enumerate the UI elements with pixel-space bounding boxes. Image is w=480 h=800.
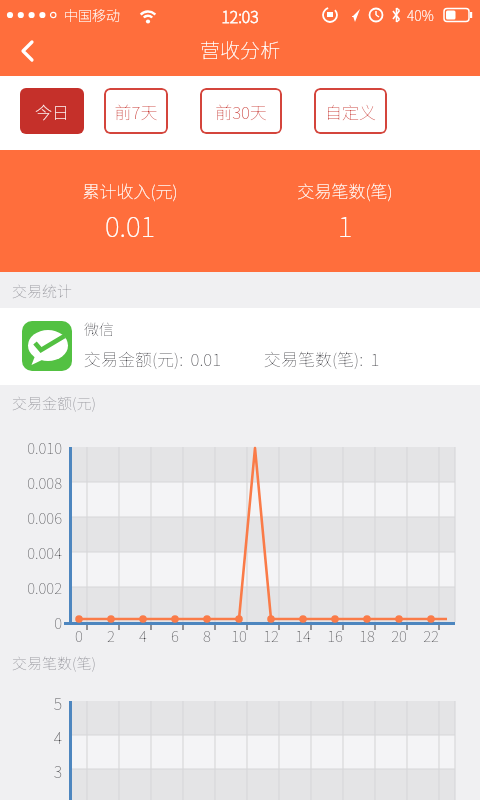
- staticText: 10: [225, 625, 253, 647]
- button[interactable]: 前7天: [104, 88, 168, 134]
- staticText: 4: [6, 725, 62, 748]
- staticText: 前7天: [104, 99, 168, 124]
- staticText: 交易金额(元): [12, 392, 96, 414]
- staticText: 交易笔数(笔): [12, 652, 96, 674]
- staticText: 0.002: [6, 577, 62, 599]
- staticText: 12: [257, 625, 285, 647]
- staticText: 自定义: [314, 99, 387, 124]
- staticText: 交易统计: [12, 280, 73, 302]
- staticText: 5: [6, 691, 62, 714]
- staticText: 16: [321, 625, 349, 647]
- button[interactable]: 今日: [20, 88, 84, 134]
- staticText: 14: [289, 625, 317, 647]
- staticText: 3: [6, 759, 62, 782]
- staticText: 中国移动: [64, 5, 120, 25]
- staticText: 0.008: [6, 472, 62, 494]
- staticText: 0.01: [0, 205, 260, 246]
- staticText: 前30天: [200, 99, 282, 124]
- staticText: 2: [97, 625, 125, 647]
- staticText: 20: [385, 625, 413, 647]
- staticText: 今日: [20, 99, 84, 124]
- staticText: 营收分析: [0, 35, 480, 64]
- staticText: 22: [417, 625, 445, 647]
- button[interactable]: 微信: [0, 308, 480, 385]
- staticText: 累计收入(元): [0, 178, 260, 203]
- button[interactable]: 自定义: [314, 88, 387, 134]
- staticText: 6: [161, 625, 189, 647]
- staticText: 8: [193, 625, 221, 647]
- staticText: 4: [129, 625, 157, 647]
- staticText: 微信: [84, 318, 115, 340]
- button[interactable]: [8, 31, 48, 71]
- staticText: 交易笔数(笔): 1: [264, 346, 380, 371]
- staticText: 12:03: [0, 4, 480, 27]
- staticText: 1: [215, 205, 475, 246]
- staticText: 0.004: [6, 542, 62, 564]
- staticText: 交易笔数(笔): [215, 178, 475, 203]
- staticText: 0: [6, 612, 62, 634]
- staticText: 0.006: [6, 507, 62, 529]
- button[interactable]: 前30天: [200, 88, 282, 134]
- staticText: 0.010: [6, 437, 62, 459]
- staticText: 40%: [407, 5, 434, 25]
- button[interactable]: 累计收入(元): [0, 150, 480, 272]
- staticText: 交易金额(元): 0.01: [84, 346, 222, 371]
- staticText: 0: [65, 625, 93, 647]
- staticText: 18: [353, 625, 381, 647]
